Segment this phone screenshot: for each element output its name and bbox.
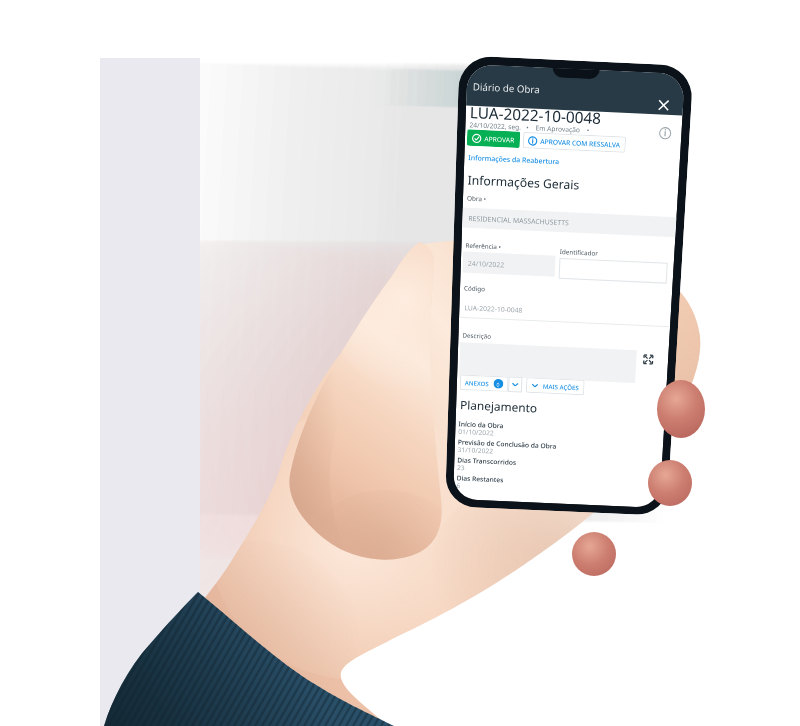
- staticText: 24/10/2022: [468, 259, 505, 269]
- staticText: LUA-2022-10-0048: [464, 303, 523, 315]
- button[interactable]: APROVAR: [467, 129, 520, 148]
- staticText: Início da Obra: [458, 420, 504, 430]
- staticText: 6: [456, 481, 460, 490]
- staticText: Identificador: [560, 247, 598, 258]
- staticText: 31/10/2022: [457, 445, 494, 455]
- button[interactable]: Expandir: [642, 353, 654, 365]
- staticText: Diário de Obra: [473, 80, 541, 96]
- staticText: 0: [496, 381, 500, 388]
- staticText: 24/10/2022, seg. • Em Aprovação •: [469, 120, 590, 135]
- button[interactable]: Mais anexos: [508, 376, 522, 392]
- staticText: Dias Restantes: [456, 474, 504, 484]
- staticText: Obra •: [467, 193, 486, 203]
- staticText: Informações Gerais: [467, 171, 580, 192]
- staticText: Referência •: [465, 241, 502, 251]
- button[interactable]: APROVAR COM RESSALVA: [523, 132, 626, 153]
- staticText: ANEXOS: [465, 378, 490, 387]
- button[interactable]: Informações: [659, 127, 672, 140]
- staticText: Informações da Reabertura: [468, 153, 560, 166]
- button[interactable]: ANEXOS: [460, 374, 509, 392]
- staticText: MAIS AÇÕES: [543, 382, 580, 391]
- staticText: 23: [457, 463, 465, 472]
- staticText: APROVAR COM RESSALVA: [540, 137, 621, 150]
- staticText: Descrição: [462, 331, 491, 341]
- staticText: APROVAR: [484, 134, 515, 145]
- button[interactable]: Informações da Reabertura: [468, 153, 560, 166]
- button[interactable]: MAIS AÇÕES: [526, 377, 585, 395]
- staticText: Dias Transcorridos: [457, 456, 517, 467]
- staticText: 01/10/2022: [458, 427, 495, 437]
- staticText: Código: [464, 283, 485, 293]
- staticText: RESIDENCIAL MASSACHUSETTS: [468, 214, 569, 227]
- staticText: Previsão de Conclusão da Obra: [458, 438, 557, 451]
- staticText: LUA-2022-10-0048: [470, 102, 602, 128]
- staticText: Planejamento: [460, 397, 538, 415]
- button[interactable]: Fechar: [656, 98, 671, 113]
